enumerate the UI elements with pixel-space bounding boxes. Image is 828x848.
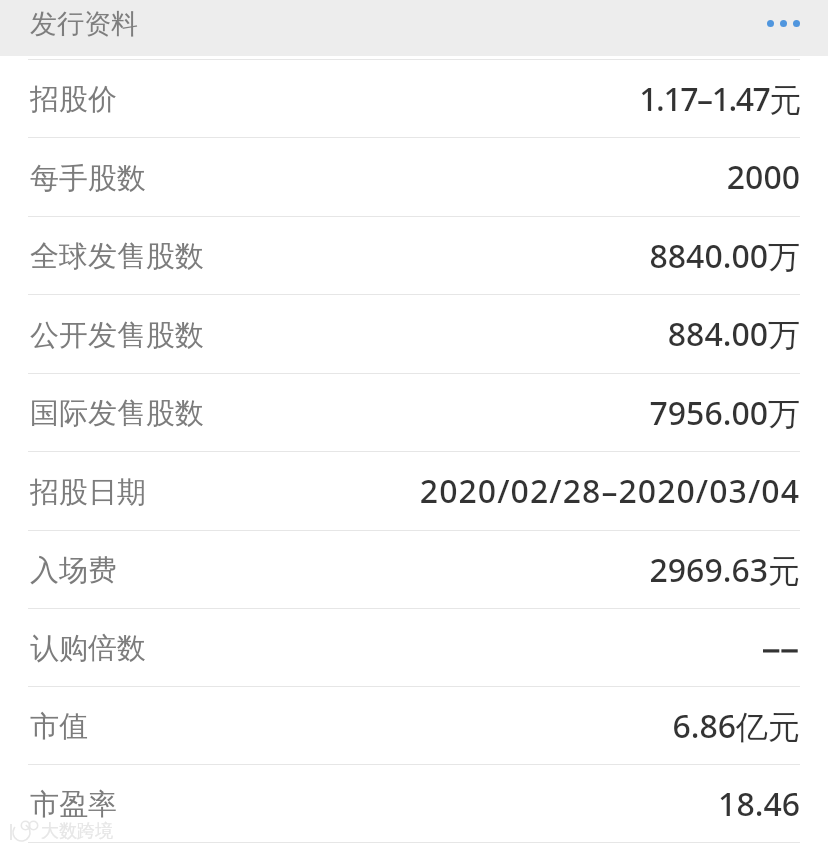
- button[interactable]: 国际发售股数: [0, 374, 828, 451]
- staticText: 公开发售股数: [30, 317, 204, 354]
- staticText: 884.00万: [667, 312, 800, 356]
- button[interactable]: 市值: [0, 687, 828, 764]
- staticText: 8840.00万: [649, 234, 800, 278]
- button[interactable]: 招股日期: [0, 452, 828, 530]
- staticText: 全球发售股数: [30, 238, 204, 275]
- staticText: 招股价: [30, 81, 117, 118]
- staticText: 6.86亿元: [672, 704, 800, 748]
- button[interactable]: 入场费: [0, 531, 828, 608]
- staticText: 招股日期: [30, 474, 146, 511]
- button[interactable]: 认购倍数: [0, 609, 828, 686]
- staticText: 1.17–1.47元: [639, 77, 800, 121]
- staticText: 2969.63元: [649, 548, 800, 592]
- staticText: 每手股数: [30, 160, 146, 197]
- staticText: 市盈率: [30, 786, 117, 823]
- staticText: 7956.00万: [649, 391, 800, 435]
- staticText: 认购倍数: [30, 630, 146, 667]
- button[interactable]: More options: [757, 10, 810, 37]
- staticText: 2000: [726, 155, 800, 199]
- staticText: 市值: [30, 708, 88, 745]
- staticText: 发行资料: [30, 7, 138, 41]
- staticText: 大数跨境: [41, 820, 113, 843]
- staticText: 18.46: [718, 782, 800, 826]
- button[interactable]: 每手股数: [0, 138, 828, 216]
- button[interactable]: 市盈率: [0, 765, 828, 842]
- button[interactable]: 全球发售股数: [0, 217, 828, 294]
- staticText: 2020/02/28–2020/03/04: [419, 469, 800, 513]
- button[interactable]: 公开发售股数: [0, 295, 828, 373]
- staticText: 入场费: [30, 552, 117, 589]
- staticText: 国际发售股数: [30, 395, 204, 432]
- button[interactable]: 招股价: [0, 60, 828, 137]
